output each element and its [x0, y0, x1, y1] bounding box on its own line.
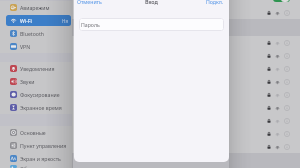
button[interactable]: Экранное время: [0, 101, 72, 114]
staticText: Ня: [62, 18, 69, 24]
button[interactable]: Обои: [0, 165, 72, 168]
staticText: Вход: [145, 0, 158, 5]
staticText: Отменить: [77, 0, 102, 5]
button[interactable]: Уведомления: [0, 62, 72, 75]
button[interactable]: Авиарежим: [0, 1, 72, 14]
button[interactable]: [72, 88, 300, 101]
staticText: Wi-Fi: [20, 17, 32, 24]
staticText: Пункт управления: [20, 142, 67, 149]
staticText: Экран и яркость: [20, 155, 61, 162]
staticText: Фокусирование: [20, 91, 60, 98]
staticText: Основные: [20, 129, 46, 136]
staticText: Авиарежим: [20, 4, 50, 11]
button[interactable]: Основные: [0, 126, 72, 139]
button[interactable]: Wi-Fi: [0, 14, 72, 27]
staticText: Уведомления: [20, 65, 55, 72]
button[interactable]: [72, 49, 300, 62]
button[interactable]: Пароль: [79, 18, 224, 31]
staticText: Bluetooth: [20, 30, 45, 37]
button[interactable]: [72, 140, 300, 153]
button[interactable]: [72, 62, 300, 75]
button[interactable]: [72, 127, 300, 140]
button[interactable]: [72, 36, 300, 49]
button[interactable]: [72, 114, 300, 127]
staticText: Обои: [20, 165, 34, 168]
button[interactable]: VPN: [0, 40, 72, 53]
button[interactable]: Пункт управления: [0, 139, 72, 152]
button[interactable]: [72, 6, 300, 19]
button[interactable]: Фокусирование: [0, 88, 72, 101]
button[interactable]: Подкл.: [206, 0, 224, 5]
staticText: Подкл.: [206, 0, 224, 5]
staticText: VPN: [20, 43, 31, 50]
button[interactable]: Отменить: [77, 0, 102, 5]
button[interactable]: Звуки: [0, 75, 72, 88]
button[interactable]: [72, 75, 300, 88]
staticText: Пароль: [81, 21, 100, 28]
button[interactable]: [72, 101, 300, 114]
staticText: Экранное время: [20, 104, 62, 111]
button[interactable]: Bluetooth: [0, 27, 72, 40]
button[interactable]: Wi-Fi on: [72, 0, 300, 6]
button[interactable]: Экран и яркость: [0, 152, 72, 165]
other: Wi-Fi on: [273, 0, 290, 2]
staticText: Звуки: [20, 78, 35, 85]
